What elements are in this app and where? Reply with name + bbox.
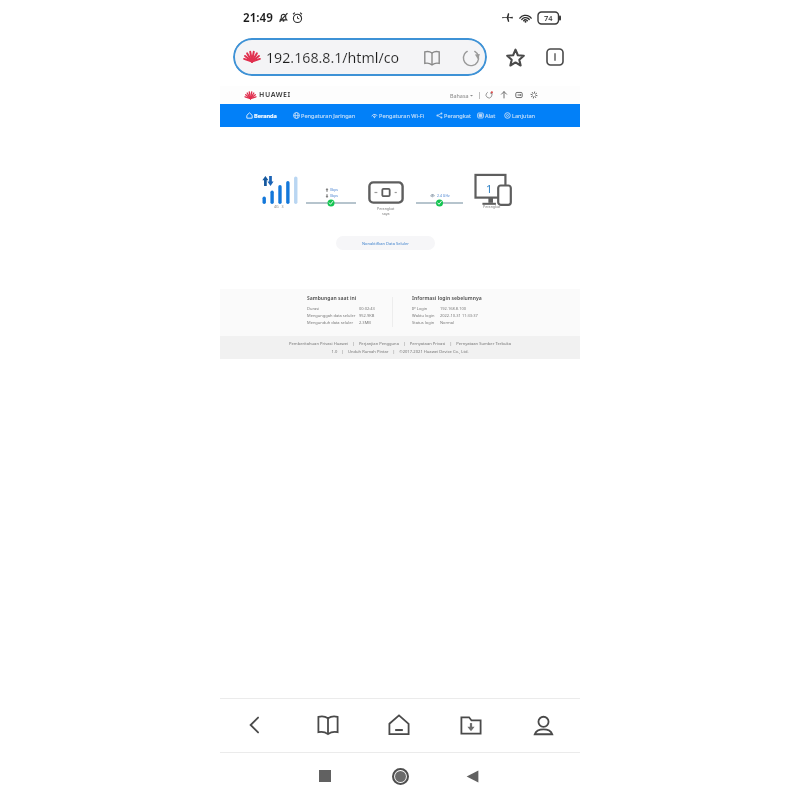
staticText: Lanjutan xyxy=(512,112,536,120)
staticText: 74 xyxy=(544,13,553,23)
button[interactable]: Settings xyxy=(530,91,538,99)
button[interactable]: Perangkat xyxy=(436,104,471,127)
staticText: Mengunggah data seluler xyxy=(307,313,356,318)
staticText: 1 xyxy=(486,181,493,196)
staticText: Normal xyxy=(440,320,455,325)
staticText: Alat xyxy=(485,112,496,120)
staticText: Sambungan saat ini xyxy=(307,295,357,302)
button[interactable]: Reload xyxy=(461,48,480,67)
button[interactable]: Refresh xyxy=(485,91,493,99)
staticText: Nonaktifkan Data Seluler xyxy=(362,241,409,246)
button[interactable]: Lanjutan xyxy=(504,104,536,127)
button[interactable]: Profile xyxy=(519,701,567,749)
button[interactable]: Back xyxy=(455,759,489,793)
staticText: Perangkat xyxy=(377,206,395,211)
staticText: Bahasa xyxy=(450,92,469,99)
button[interactable]: Bahasa xyxy=(450,92,473,99)
staticText: 00:02:43 xyxy=(359,306,375,311)
staticText: 0bps xyxy=(330,187,338,192)
button[interactable]: Recents xyxy=(308,759,342,793)
staticText: Mengunduh data seluler xyxy=(307,320,354,325)
staticText: Perangkat xyxy=(483,204,501,209)
staticText: Pengaturan Jaringan xyxy=(301,112,356,120)
staticText: 192.168.8.1/html/co xyxy=(266,48,400,67)
staticText: 2.3MB xyxy=(359,320,371,325)
button[interactable]: 192.168.8.1/html/co xyxy=(233,38,487,76)
staticText: HUAWEI xyxy=(259,90,291,100)
button[interactable]: Home xyxy=(375,701,423,749)
staticText: Perangkat xyxy=(444,112,471,120)
staticText: IP Login xyxy=(412,306,428,311)
button[interactable]: Pengaturan Jaringan xyxy=(293,104,356,127)
staticText: 952.9KB xyxy=(359,313,375,318)
button[interactable]: Log out xyxy=(515,91,523,99)
button[interactable]: HUAWEI xyxy=(245,89,291,101)
button[interactable]: Reader mode xyxy=(422,48,441,67)
button[interactable]: Upload xyxy=(500,91,508,99)
staticText: 1.0 | Unduh Rumah Pintar | ©2017-2021 Hu… xyxy=(331,349,469,355)
staticText: 4G 3 xyxy=(274,204,284,209)
button[interactable]: Back xyxy=(231,701,279,749)
button[interactable]: Alat xyxy=(477,104,496,127)
staticText: Pemberitahuan Privasi Huawei | Perjanjia… xyxy=(289,341,511,347)
staticText: 0bps xyxy=(330,193,338,198)
button[interactable]: Pengaturan Wi-Fi xyxy=(371,104,425,127)
button[interactable]: Tabs xyxy=(543,45,567,69)
staticText: Beranda xyxy=(254,112,277,120)
staticText: 2022-10-31 11:33:37 xyxy=(440,313,478,318)
staticText: 2.4 GHz xyxy=(437,193,450,198)
staticText: Durasi xyxy=(307,306,320,311)
button[interactable]: Bookmarks xyxy=(304,701,352,749)
staticText: saya xyxy=(382,211,390,216)
button[interactable]: Home xyxy=(383,759,417,793)
button[interactable]: Downloads xyxy=(447,701,495,749)
button[interactable]: Beranda xyxy=(246,104,277,127)
button[interactable]: Bookmark xyxy=(503,45,527,69)
staticText: Pengaturan Wi-Fi xyxy=(379,112,425,120)
button[interactable]: Nonaktifkan Data Seluler xyxy=(336,236,435,250)
staticText: Status login xyxy=(412,320,435,325)
staticText: 21:49 xyxy=(243,10,273,26)
staticText: Waktu login xyxy=(412,313,435,318)
staticText: Informasi login sebelumnya xyxy=(412,295,482,302)
staticText: 192.168.8.100 xyxy=(440,306,467,311)
